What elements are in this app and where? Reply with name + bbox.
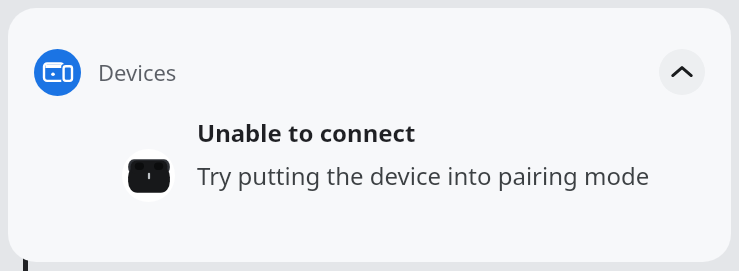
staticText: Unable to connect [197, 116, 416, 149]
staticText: Devices [98, 57, 177, 87]
staticText: Try putting the device into pairing mode [197, 159, 650, 192]
button[interactable]: Collapse [659, 49, 705, 95]
button[interactable]: Devices [8, 8, 731, 262]
